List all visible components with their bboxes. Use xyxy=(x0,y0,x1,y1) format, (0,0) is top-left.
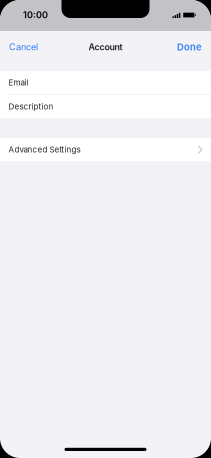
staticText: Cancel xyxy=(9,41,38,52)
button[interactable]: Description xyxy=(0,95,211,119)
button[interactable]: Cancel xyxy=(8,35,39,58)
button[interactable]: Email xyxy=(0,71,211,94)
staticText: Description xyxy=(8,102,53,112)
staticText: Email xyxy=(8,78,28,87)
button[interactable]: Done xyxy=(176,35,203,59)
staticText: Done xyxy=(177,41,202,53)
staticText: 10:00 xyxy=(23,9,48,20)
staticText: Account xyxy=(88,42,122,52)
staticText: Advanced Settings xyxy=(8,145,80,155)
button[interactable]: Advanced Settings xyxy=(0,138,211,161)
